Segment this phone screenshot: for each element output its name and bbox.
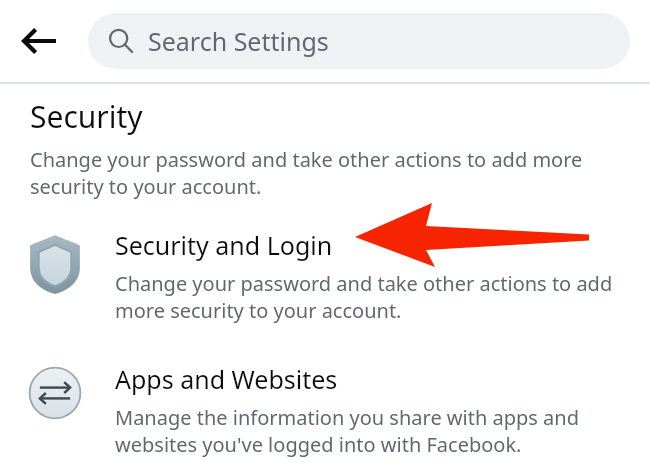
button[interactable]: Apps and Websites (0, 356, 650, 464)
staticText: Security and Login (115, 228, 333, 262)
button[interactable]: Back (8, 9, 72, 73)
staticText: Change your password and take other acti… (30, 146, 583, 200)
staticText: Apps and Websites (115, 362, 338, 396)
staticText: Search Settings (148, 24, 329, 58)
staticText: Manage the information you share with ap… (115, 404, 579, 458)
staticText: Security (30, 96, 143, 137)
staticText: Change your password and take other acti… (115, 270, 613, 324)
button[interactable]: Security and Login (0, 222, 650, 330)
button[interactable]: Search Settings (88, 13, 630, 69)
